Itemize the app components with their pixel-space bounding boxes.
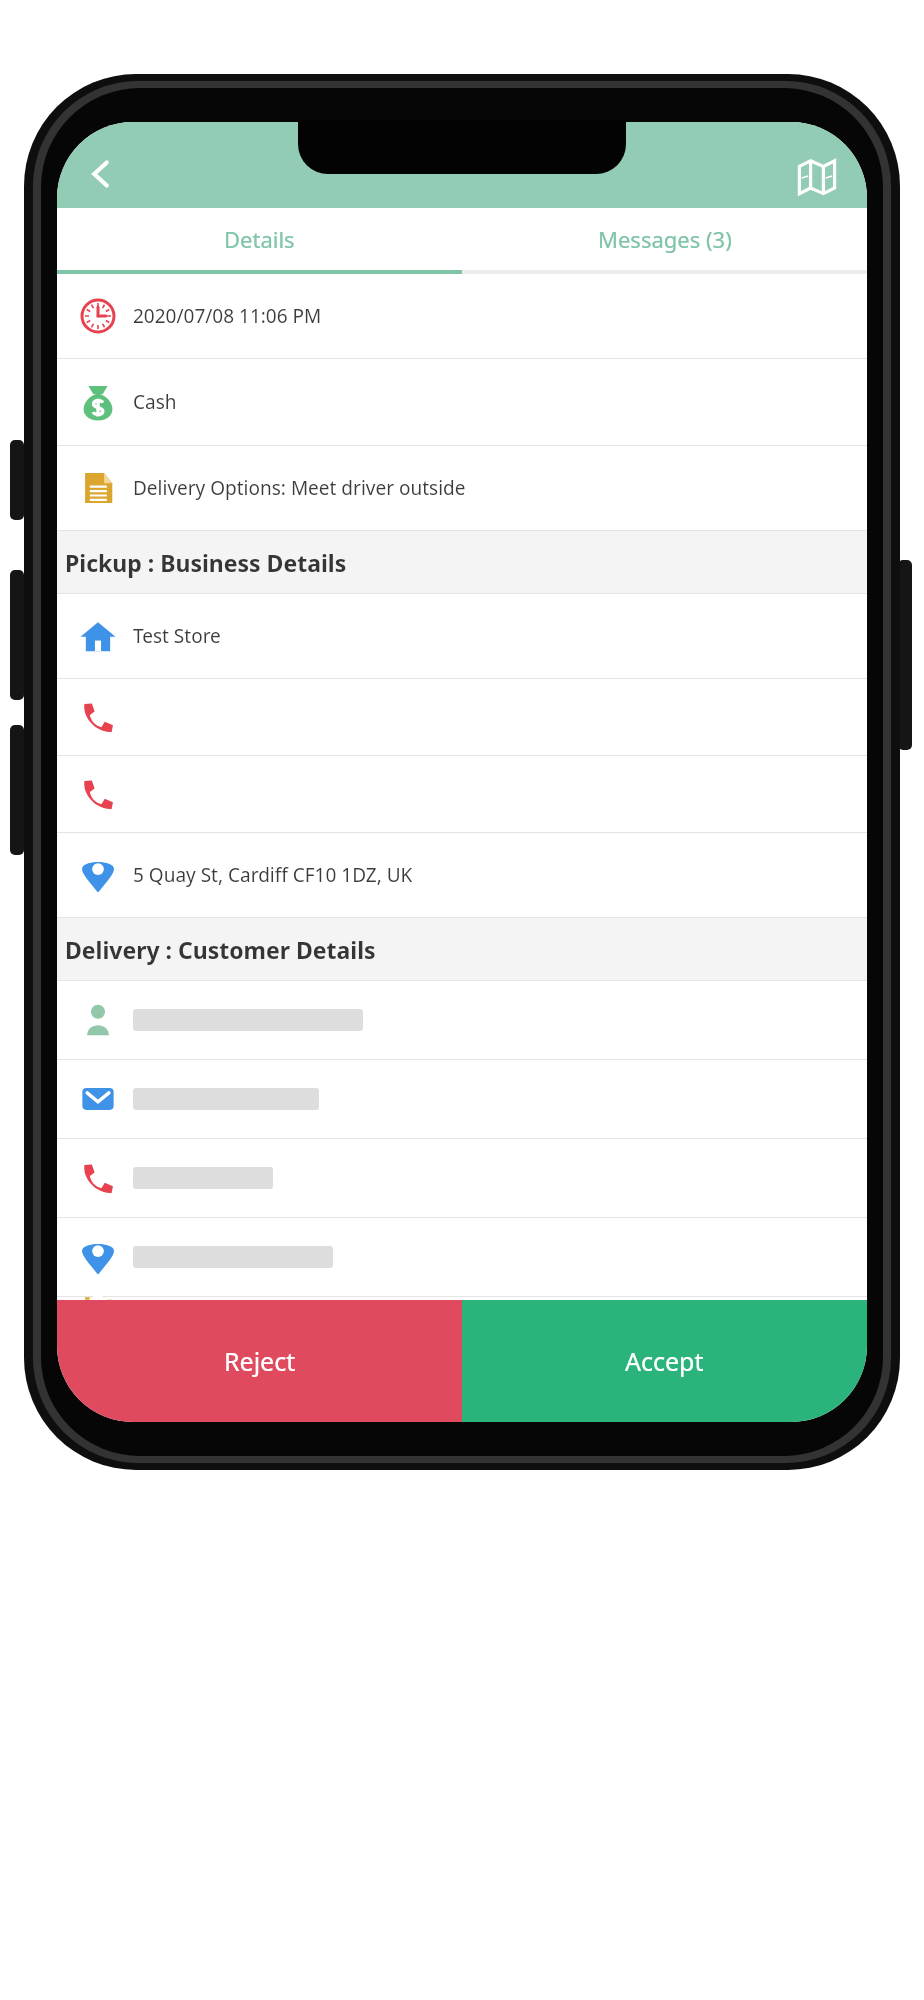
button[interactable]: Map bbox=[791, 150, 843, 202]
staticText: Pickup : Business Details bbox=[65, 547, 347, 578]
button[interactable]: Test Store bbox=[57, 594, 867, 678]
button[interactable] bbox=[57, 1297, 867, 1300]
staticText: Details bbox=[224, 224, 295, 254]
button[interactable]: 5 Quay St, Cardiff CF10 1DZ, UK bbox=[57, 833, 867, 917]
button[interactable]: Cash bbox=[57, 359, 867, 445]
staticText: Test Store bbox=[133, 623, 221, 649]
button[interactable]: Delivery Options: Meet driver outside bbox=[57, 446, 867, 530]
button[interactable] bbox=[57, 981, 867, 1059]
staticText: Cash bbox=[133, 389, 177, 415]
button[interactable] bbox=[57, 1060, 867, 1138]
staticText: Messages (3) bbox=[598, 224, 732, 254]
button[interactable]: Details bbox=[57, 208, 462, 270]
button[interactable]: Messages (3) bbox=[462, 208, 867, 270]
button[interactable]: Accept bbox=[462, 1300, 867, 1422]
staticText: Delivery Options: Meet driver outside bbox=[133, 475, 466, 501]
button[interactable] bbox=[57, 1139, 867, 1217]
button[interactable]: Back bbox=[77, 150, 125, 198]
staticText: Reject bbox=[224, 1344, 296, 1378]
staticText: 5 Quay St, Cardiff CF10 1DZ, UK bbox=[133, 862, 413, 888]
button[interactable] bbox=[57, 679, 867, 755]
button[interactable] bbox=[57, 1218, 867, 1296]
button[interactable]: Reject bbox=[57, 1300, 462, 1422]
staticText: Delivery : Customer Details bbox=[65, 934, 376, 965]
button[interactable] bbox=[57, 756, 867, 832]
staticText: Accept bbox=[625, 1344, 704, 1378]
button[interactable]: 2020/07/08 11:06 PM bbox=[57, 274, 867, 358]
staticText: 2020/07/08 11:06 PM bbox=[133, 303, 322, 329]
